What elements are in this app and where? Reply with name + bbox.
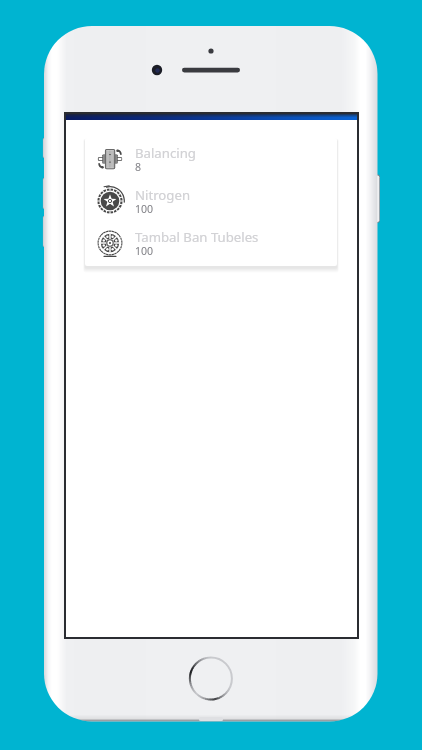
button[interactable]: Nitrogen [85,180,337,222]
staticText: 100 [135,202,154,216]
staticText: Tambal Ban Tubeles [135,228,259,246]
staticText: Nitrogen [135,186,191,204]
staticText: 100 [135,244,154,258]
staticText: Balancing [135,144,196,162]
button[interactable]: Tambal Ban Tubeles [85,222,337,264]
staticText: 8 [135,160,142,174]
button[interactable]: Balancing [85,138,337,180]
